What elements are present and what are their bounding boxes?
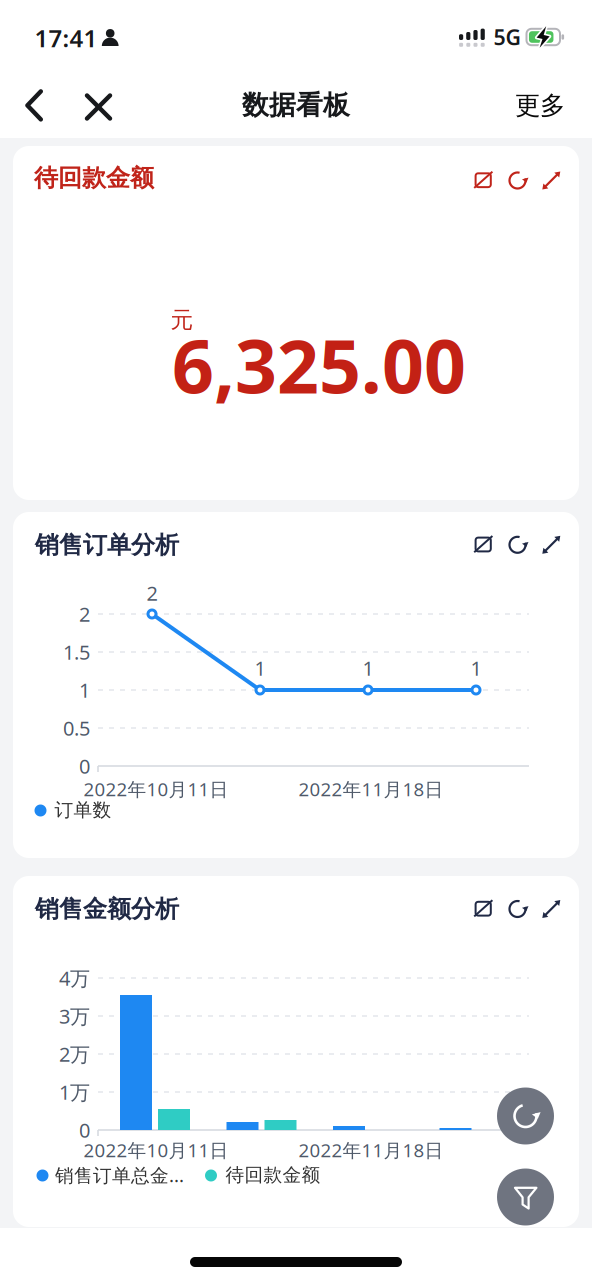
staticText: 销售订单总金... (55, 1163, 184, 1187)
button[interactable]: Refresh (505, 168, 529, 192)
button[interactable]: Refresh (497, 1087, 554, 1144)
staticText: 数据看板 (242, 89, 350, 121)
button[interactable]: Refresh (505, 533, 529, 557)
staticText: 5G (493, 23, 520, 51)
button[interactable]: Close (80, 89, 116, 125)
button[interactable]: Expand (539, 168, 563, 192)
staticText: 2万 (59, 1041, 90, 1067)
staticText: 1 (254, 655, 265, 681)
button[interactable]: Refresh (505, 897, 529, 921)
staticText: 待回款金额 (225, 1163, 320, 1186)
staticText: 1 (362, 655, 373, 681)
staticText: 元 (170, 306, 193, 334)
staticText: 2022年10月11日 (83, 1138, 228, 1162)
staticText: 17:41 (34, 22, 97, 54)
staticText: 2022年11月18日 (298, 1138, 443, 1162)
button[interactable]: Edit chart (472, 533, 496, 557)
staticText: 1.5 (63, 639, 90, 665)
staticText: 1 (79, 677, 90, 703)
staticText: 2 (146, 580, 157, 606)
button[interactable]: Edit chart (472, 897, 496, 921)
staticText: 0 (79, 1117, 90, 1143)
button[interactable]: Edit chart (472, 168, 496, 192)
staticText: 订单数 (54, 798, 111, 821)
button[interactable]: Expand (539, 897, 563, 921)
staticText: 待回款金额 (34, 163, 154, 193)
staticText: 1 (470, 655, 481, 681)
staticText: 0.5 (63, 715, 90, 741)
staticText: 更多 (515, 90, 565, 121)
staticText: 1万 (59, 1079, 90, 1105)
button[interactable]: Filter (497, 1168, 554, 1225)
staticText: 2022年10月11日 (83, 777, 228, 801)
staticText: 2 (79, 601, 90, 627)
staticText: 4万 (59, 965, 90, 991)
staticText: 3万 (59, 1003, 90, 1029)
button[interactable]: 更多 (515, 90, 565, 121)
staticText: 销售金额分析 (35, 894, 179, 924)
staticText: 0 (79, 753, 90, 779)
staticText: 销售订单分析 (35, 530, 179, 560)
button[interactable]: Back (19, 88, 49, 122)
staticText: 6,325.00 (172, 316, 466, 414)
button[interactable]: Expand (539, 533, 563, 557)
staticText: 2022年11月18日 (298, 777, 443, 801)
